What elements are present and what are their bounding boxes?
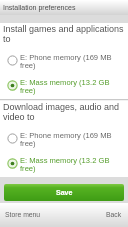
staticText: E: Phone memory (169 MB: [20, 131, 112, 139]
staticText: free): [20, 164, 36, 172]
staticText: Save: [56, 189, 73, 197]
staticText: free): [20, 61, 36, 69]
button[interactable]: E: Mass memory (13.2 GB: [0, 73, 128, 98]
staticText: free): [20, 86, 36, 94]
staticText: video to: [3, 112, 35, 122]
button[interactable]: E: Mass memory (13.2 GB: [0, 151, 128, 176]
staticText: Download images, audio and: [3, 102, 120, 112]
staticText: E: Mass memory (13.2 GB: [20, 78, 110, 86]
staticText: E: Mass memory (13.2 GB: [20, 156, 110, 164]
button[interactable]: Store menu: [0, 208, 47, 222]
staticText: Store menu: [5, 211, 41, 219]
staticText: E: Phone memory (169 MB: [20, 53, 112, 61]
button[interactable]: E: Phone memory (169 MB: [0, 48, 128, 73]
button[interactable]: Back: [100, 208, 128, 222]
button[interactable]: Save: [4, 184, 124, 201]
staticText: to: [3, 34, 11, 44]
staticText: Back: [106, 211, 122, 219]
button[interactable]: E: Phone memory (169 MB: [0, 126, 128, 151]
staticText: free): [20, 139, 36, 147]
staticText: Installation preferences: [3, 4, 76, 12]
staticText: Install games and applications: [3, 24, 124, 34]
